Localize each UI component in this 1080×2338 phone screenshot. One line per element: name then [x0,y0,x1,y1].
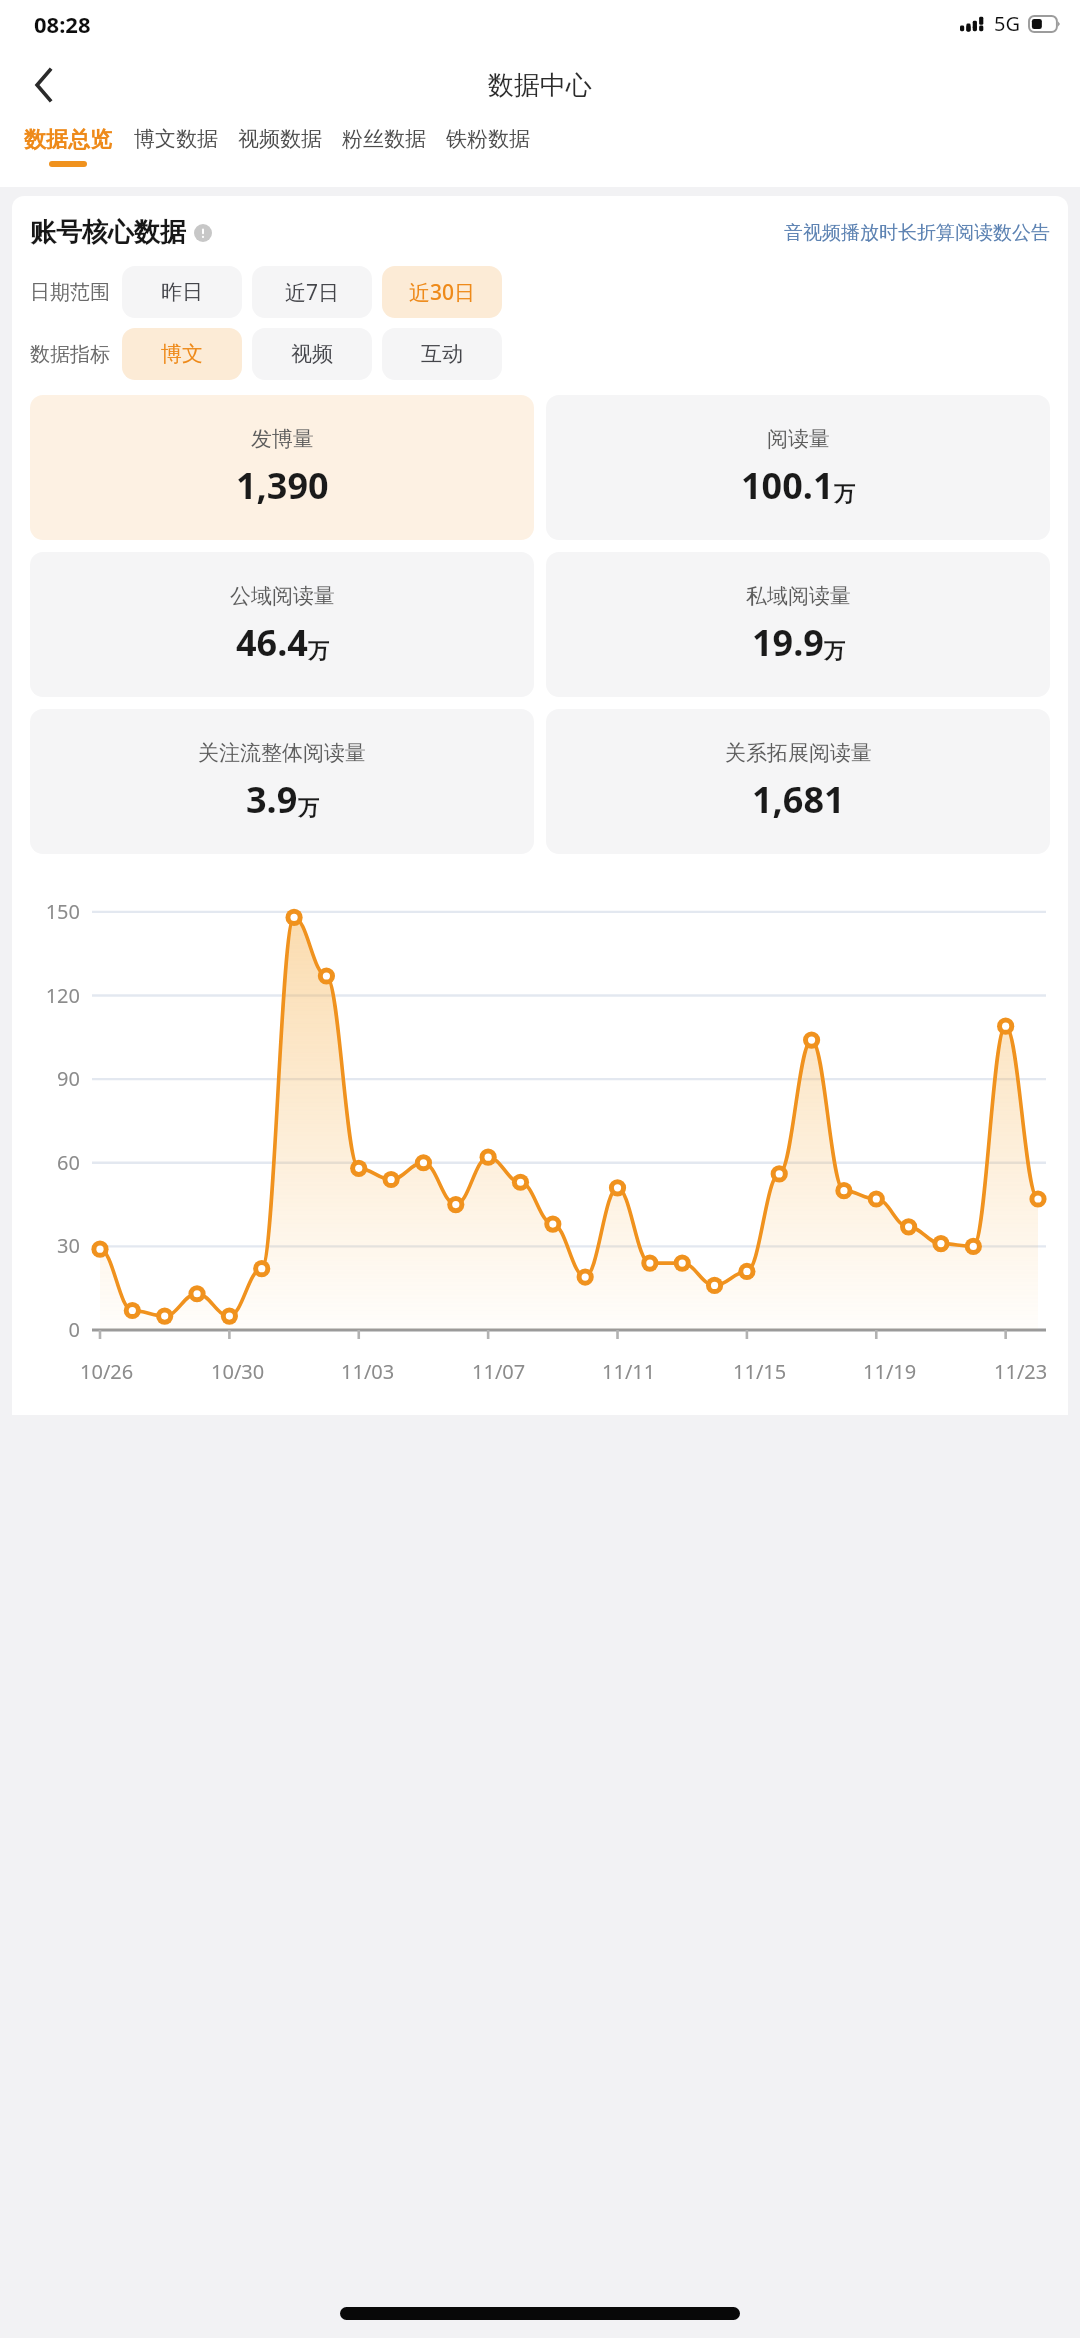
staticText: 08:28 [34,9,91,39]
staticText: 博文数据 [134,126,218,152]
button[interactable]: 关注流整体阅读量 [30,709,534,854]
button[interactable]: 视频 [252,328,372,380]
staticText: 万 [308,638,329,664]
staticText: 视频数据 [238,126,322,152]
staticText: 11/03 [341,1358,395,1385]
button[interactable]: 近30日 [382,266,502,318]
staticText: 1,681 [752,775,845,824]
staticText: 10/26 [80,1358,134,1385]
staticText: 100.1 [741,461,834,510]
staticText: 数据总览 [24,126,112,154]
staticText: 公域阅读量 [230,583,335,609]
staticText: 关注流整体阅读量 [198,740,366,766]
staticText: 博文 [161,341,203,367]
staticText: 5G [994,10,1020,37]
staticText: 11/11 [602,1358,656,1385]
staticText: 0 [68,1316,80,1343]
staticText: 互动 [421,341,463,367]
button[interactable]: 音视频播放时长折算阅读数公告 [784,221,1050,245]
staticText: 粉丝数据 [342,126,426,152]
button[interactable]: 近7日 [252,266,372,318]
staticText: 万 [824,638,845,664]
staticText: 30 [57,1232,80,1259]
staticText: 铁粉数据 [446,126,530,152]
button[interactable]: 博文数据 [124,123,228,187]
button[interactable]: 私域阅读量 [546,552,1050,697]
staticText: 1,390 [236,461,329,510]
staticText: 昨日 [161,279,203,305]
button[interactable]: 发博量 [30,395,534,540]
button[interactable]: 视频数据 [228,123,332,187]
staticText: 60 [57,1149,80,1176]
staticText: 私域阅读量 [746,583,851,609]
staticText: 10/30 [211,1358,265,1385]
staticText: 视频 [291,341,333,367]
button[interactable]: 数据总览 [12,123,124,187]
staticText: 150 [45,898,80,925]
staticText: 近7日 [285,278,340,307]
staticText: 11/07 [472,1358,526,1385]
staticText: 日期范围 [30,280,110,305]
staticText: 万 [298,795,319,821]
staticText: 11/15 [733,1358,787,1385]
staticText: 近30日 [409,278,476,307]
button[interactable]: 关系拓展阅读量 [546,709,1050,854]
staticText: 万 [834,481,855,507]
staticText: 数据中心 [488,69,592,102]
staticText: 120 [45,982,80,1009]
button[interactable]: 粉丝数据 [332,123,436,187]
staticText: 发博量 [251,426,314,452]
staticText: 关系拓展阅读量 [725,740,872,766]
button[interactable]: 昨日 [122,266,242,318]
button[interactable]: 阅读量 [546,395,1050,540]
button[interactable]: 互动 [382,328,502,380]
staticText: 90 [57,1065,80,1092]
staticText: 数据指标 [30,342,110,367]
button[interactable]: 公域阅读量 [30,552,534,697]
staticText: 11/19 [863,1358,917,1385]
staticText: 46.4 [236,618,308,667]
button[interactable]: 铁粉数据 [436,123,540,187]
button[interactable]: 账号核心数据 [30,216,212,249]
staticText: 阅读量 [767,426,830,452]
button[interactable]: Back [14,56,72,114]
button[interactable]: 博文 [122,328,242,380]
staticText: 3.9 [246,775,298,824]
staticText: 11/23 [994,1358,1048,1385]
staticText: 账号核心数据 [30,216,186,249]
staticText: 19.9 [752,618,824,667]
